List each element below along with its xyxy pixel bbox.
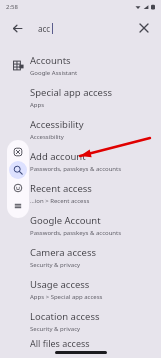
button[interactable]: Location access: [0, 305, 161, 337]
staticText: Accessibility: [30, 133, 64, 141]
button[interactable]: Add account: [0, 145, 161, 177]
button[interactable]: More options: [9, 197, 27, 215]
button[interactable]: Usage access: [0, 273, 161, 305]
staticText: Apps: [30, 101, 45, 109]
staticText: Google Assistant: [30, 69, 78, 77]
button[interactable]: Camera access: [0, 241, 161, 273]
staticText: Apps > Special app access: [30, 293, 103, 301]
staticText: Accounts: [30, 54, 71, 67]
staticText: Security & privacy: [30, 325, 81, 333]
staticText: acc: [38, 23, 51, 34]
button[interactable]: Back: [6, 17, 28, 39]
button[interactable]: Recent access: [0, 177, 161, 209]
staticText: Security & privacy: [30, 261, 81, 269]
staticText: …ion > Recent access: [30, 197, 90, 205]
staticText: Add account: [30, 150, 86, 163]
staticText: All files access: [30, 337, 90, 349]
button[interactable]: Search: [9, 161, 27, 179]
button[interactable]: Google Account: [0, 209, 161, 241]
staticText: Location access: [30, 310, 100, 323]
staticText: Passwords, passkeys & accounts: [30, 165, 122, 173]
staticText: Accessibility: [30, 118, 84, 131]
staticText: Camera access: [30, 246, 97, 259]
staticText: Usage access: [30, 278, 90, 291]
button[interactable]: Emoji: [9, 179, 27, 197]
staticText: Special app access: [30, 86, 113, 99]
button[interactable]: Special app access: [0, 81, 161, 113]
staticText: Google Account: [30, 214, 101, 227]
staticText: Passwords, passkeys & accounts: [30, 229, 122, 237]
button[interactable]: Clear search: [133, 17, 155, 39]
staticText: Recent access: [30, 182, 92, 195]
staticText: 2:58: [6, 3, 18, 11]
button[interactable]: All files access: [0, 337, 161, 351]
button[interactable]: Accessibility: [0, 113, 161, 145]
button[interactable]: Accounts: [0, 49, 161, 81]
button[interactable]: Close toolbar: [9, 143, 27, 161]
